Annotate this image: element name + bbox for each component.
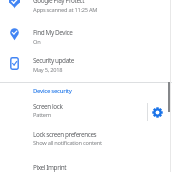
staticText: Find My Device bbox=[33, 28, 73, 37]
staticText: Pattern bbox=[33, 111, 52, 119]
staticText: Security update bbox=[33, 56, 74, 65]
button[interactable]: Security update bbox=[0, 50, 172, 78]
button[interactable]: Pixel Imprint bbox=[0, 159, 172, 172]
staticText: May 5, 2018 bbox=[33, 66, 63, 74]
staticText: Google Play Protect bbox=[33, 0, 85, 5]
staticText: Device security bbox=[33, 87, 72, 95]
staticText: Apps scanned at 11:25 AM bbox=[33, 6, 98, 14]
staticText: Pixel Imprint bbox=[33, 163, 67, 172]
button[interactable]: Screen lock bbox=[0, 99, 146, 125]
button[interactable]: Find My Device bbox=[0, 22, 172, 50]
staticText: Screen lock bbox=[33, 102, 63, 111]
staticText: On bbox=[33, 38, 41, 46]
staticText: Show all notification content bbox=[33, 139, 102, 147]
button[interactable] bbox=[148, 103, 167, 122]
button[interactable]: Google Play Protect bbox=[0, 0, 172, 21]
button[interactable]: Lock screen preferences bbox=[0, 127, 172, 155]
staticText: Lock screen preferences bbox=[33, 130, 97, 139]
